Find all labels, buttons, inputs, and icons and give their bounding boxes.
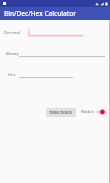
other: Nibble toggle (96, 109, 105, 115)
staticText: Bin/Dec/Hex Calculator (4, 9, 76, 18)
staticText: TRIM ZEROS (49, 110, 73, 115)
staticText: Binary (6, 51, 19, 57)
button[interactable]: Binary (0, 48, 110, 59)
button[interactable]: Hex (0, 69, 110, 80)
button[interactable]: TRIM ZEROS (46, 108, 76, 117)
staticText: Nibble (81, 109, 94, 115)
staticText: Decimal (4, 30, 20, 36)
staticText: Hex (8, 72, 16, 78)
button[interactable]: Bin/Dec/Hex Calculator (0, 7, 110, 20)
button[interactable]: Decimal (0, 27, 110, 38)
button[interactable]: Nibble (81, 108, 105, 116)
